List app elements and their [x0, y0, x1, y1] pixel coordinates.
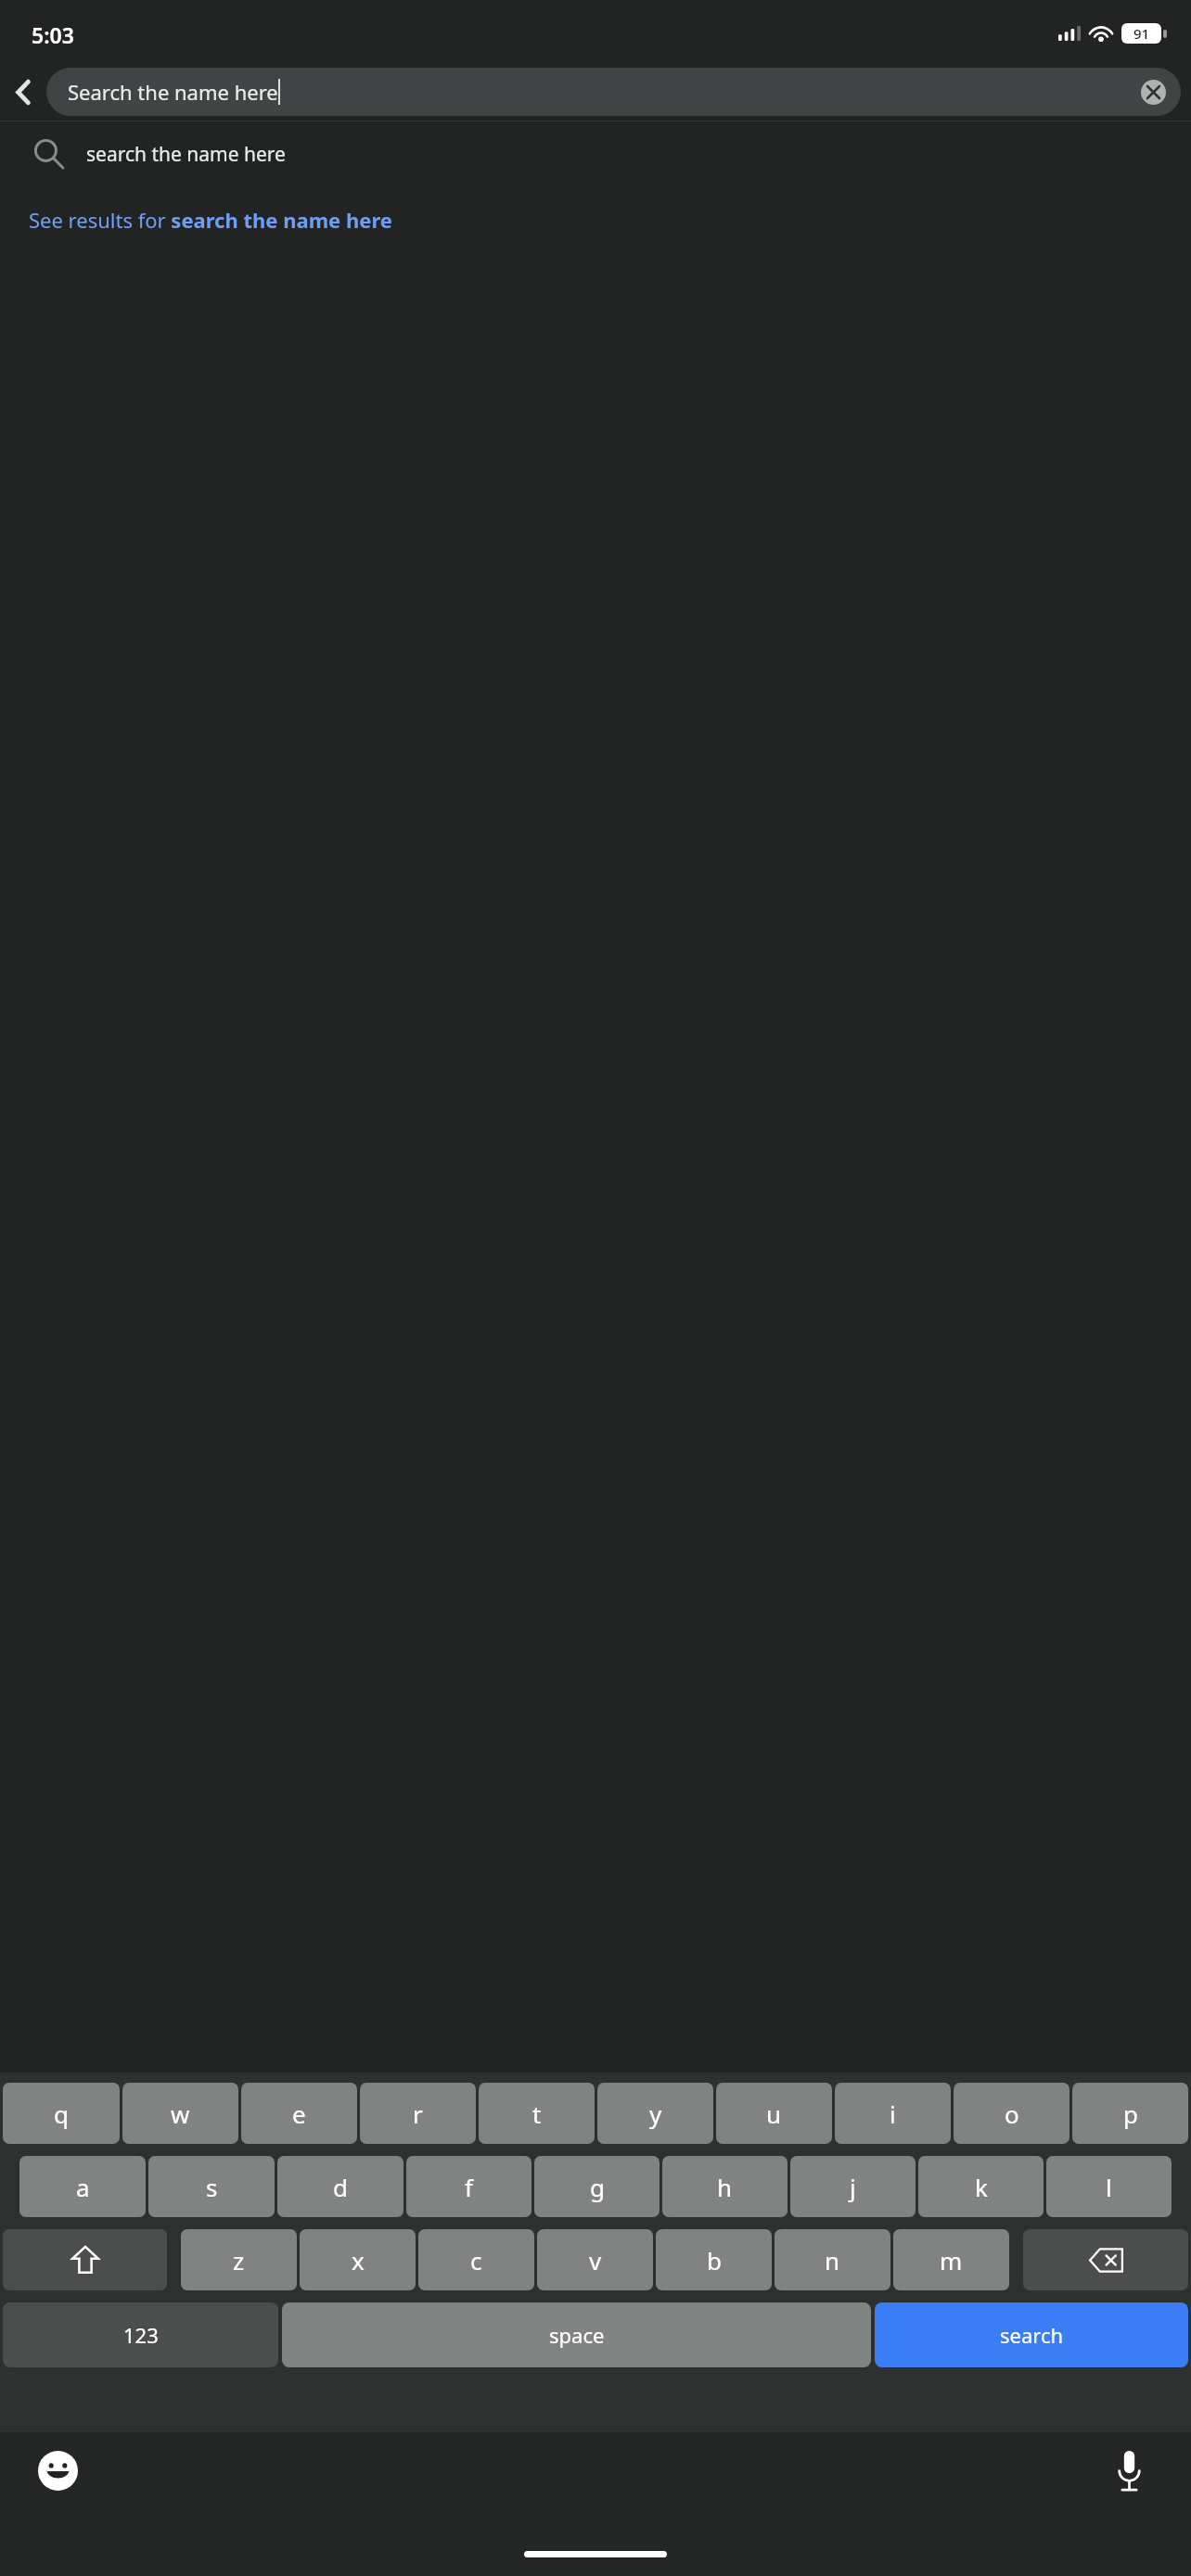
- staticText: q: [54, 2098, 69, 2130]
- staticText: h: [717, 2171, 733, 2203]
- staticText: z: [233, 2244, 245, 2276]
- button[interactable]: q: [3, 2083, 120, 2144]
- button[interactable]: k: [918, 2156, 1044, 2217]
- button[interactable]: Voice input: [1102, 2443, 1156, 2497]
- button[interactable]: o: [954, 2083, 1069, 2144]
- staticText: u: [766, 2098, 782, 2130]
- button[interactable]: n: [775, 2229, 890, 2290]
- staticText: m: [940, 2244, 963, 2276]
- staticText: x: [352, 2244, 365, 2276]
- button[interactable]: f: [406, 2156, 531, 2217]
- button[interactable]: g: [534, 2156, 660, 2217]
- staticText: c: [470, 2244, 482, 2276]
- staticText: search: [1000, 2321, 1064, 2349]
- button[interactable]: See results for search the name here: [0, 186, 1191, 253]
- button[interactable]: z: [181, 2229, 297, 2290]
- button[interactable]: search the name here: [0, 121, 1191, 186]
- staticText: space: [549, 2321, 605, 2349]
- staticText: r: [413, 2098, 423, 2130]
- button[interactable]: v: [537, 2229, 653, 2290]
- staticText: t: [532, 2098, 542, 2130]
- button[interactable]: a: [19, 2156, 146, 2217]
- staticText: n: [825, 2244, 840, 2276]
- button[interactable]: d: [277, 2156, 403, 2217]
- staticText: f: [465, 2171, 473, 2203]
- staticText: 91: [1133, 24, 1150, 43]
- staticText: g: [590, 2171, 605, 2203]
- staticText: b: [707, 2244, 722, 2276]
- button[interactable]: l: [1046, 2156, 1172, 2217]
- staticText: 123: [123, 2321, 159, 2349]
- button[interactable]: p: [1072, 2083, 1188, 2144]
- button[interactable]: Emoji keyboard: [31, 2443, 84, 2497]
- button[interactable]: search: [875, 2302, 1188, 2367]
- button[interactable]: Back: [0, 63, 46, 121]
- staticText: v: [589, 2244, 602, 2276]
- button[interactable]: r: [360, 2083, 476, 2144]
- staticText: s: [206, 2171, 218, 2203]
- button[interactable]: space: [282, 2302, 871, 2367]
- button[interactable]: x: [300, 2229, 416, 2290]
- button[interactable]: y: [597, 2083, 713, 2144]
- staticText: 5:03: [32, 20, 74, 49]
- button[interactable]: i: [835, 2083, 951, 2144]
- staticText: search the name here: [86, 141, 286, 168]
- button[interactable]: Clear text: [1141, 80, 1166, 105]
- button[interactable]: e: [241, 2083, 357, 2144]
- button[interactable]: w: [122, 2083, 238, 2144]
- button[interactable]: u: [716, 2083, 832, 2144]
- staticText: e: [292, 2098, 306, 2130]
- staticText: Search the name here: [68, 78, 278, 106]
- button[interactable]: 123: [3, 2302, 278, 2367]
- button[interactable]: Backspace: [1023, 2229, 1188, 2290]
- staticText: See results for search the name here: [29, 206, 392, 234]
- staticText: p: [1123, 2098, 1138, 2130]
- staticText: y: [649, 2098, 662, 2130]
- staticText: a: [76, 2171, 90, 2203]
- staticText: i: [890, 2098, 896, 2130]
- button[interactable]: j: [790, 2156, 916, 2217]
- button[interactable]: Shift: [3, 2229, 167, 2290]
- staticText: w: [171, 2098, 190, 2130]
- staticText: j: [850, 2171, 856, 2203]
- button[interactable]: Search the name here: [46, 68, 1181, 116]
- button[interactable]: t: [479, 2083, 595, 2144]
- button[interactable]: c: [418, 2229, 534, 2290]
- button[interactable]: m: [893, 2229, 1009, 2290]
- button[interactable]: s: [148, 2156, 275, 2217]
- button[interactable]: h: [662, 2156, 788, 2217]
- staticText: d: [333, 2171, 348, 2203]
- staticText: l: [1106, 2171, 1112, 2203]
- staticText: k: [975, 2171, 988, 2203]
- button[interactable]: b: [656, 2229, 772, 2290]
- staticText: o: [1005, 2098, 1019, 2130]
